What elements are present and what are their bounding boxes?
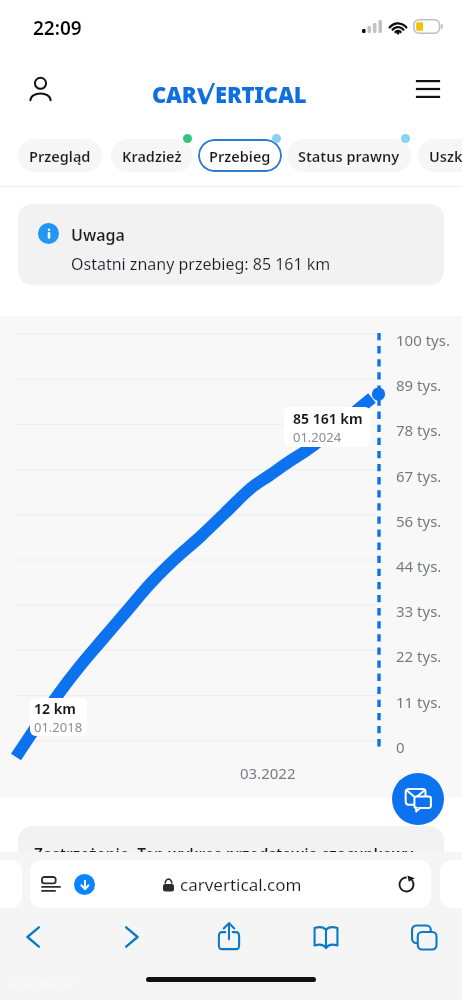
staticText: 78 tys. xyxy=(396,420,442,440)
staticText: 89 tys. xyxy=(396,375,442,395)
button[interactable]: Downloads xyxy=(74,874,95,895)
staticText: 03.2022 xyxy=(240,763,296,783)
button[interactable]: Tabs xyxy=(402,915,446,959)
button[interactable]: Uszkodzenia xyxy=(418,139,462,172)
button[interactable]: Status prawny xyxy=(287,139,411,172)
button[interactable]: Przebieg xyxy=(198,139,282,172)
button[interactable]: Reload xyxy=(394,872,418,896)
staticText: 85 161 km xyxy=(293,409,363,428)
button[interactable]: Menu xyxy=(406,67,450,111)
button[interactable]: Uwaga xyxy=(18,204,444,285)
staticText: CAR xyxy=(152,79,197,109)
staticText: 0 xyxy=(396,737,405,757)
button[interactable]: Page settings xyxy=(38,872,62,896)
button[interactable]: Zastrzeżenie. Ten wykres przedstawia sza… xyxy=(18,826,444,866)
button[interactable]: Chat with us xyxy=(392,773,444,825)
staticText: 12 km xyxy=(34,699,76,718)
staticText: 33 tys. xyxy=(396,601,442,621)
button[interactable]: Back xyxy=(11,915,55,959)
button[interactable]: Forward xyxy=(110,915,154,959)
staticText: 22 tys. xyxy=(396,646,442,666)
staticText: Uwaga xyxy=(71,224,125,246)
staticText: Przegląd xyxy=(29,146,91,166)
staticText: 100 tys. xyxy=(396,330,450,350)
staticText: ERTICAL xyxy=(215,79,307,109)
staticText: 56 tys. xyxy=(396,511,442,531)
button[interactable]: Account xyxy=(18,67,62,111)
staticText: Przebieg xyxy=(209,146,271,166)
staticText: 01.2024 xyxy=(293,428,342,446)
staticText: 22:09 xyxy=(33,15,82,41)
staticText: Ostatni znany przebieg: 85 161 km xyxy=(71,253,331,275)
staticText: Uszkodzenia xyxy=(429,146,462,166)
staticText: 44 tys. xyxy=(396,556,442,576)
staticText: Status prawny xyxy=(298,146,400,166)
button[interactable]: Przegląd xyxy=(18,139,102,172)
button[interactable]: Kradzież xyxy=(111,139,193,172)
button[interactable]: Share xyxy=(207,914,251,958)
button[interactable]: Page settings xyxy=(30,860,431,908)
staticText: carvertical.com xyxy=(180,873,302,896)
staticText: 11 tys. xyxy=(396,692,442,712)
button[interactable]: Bookmarks xyxy=(304,915,348,959)
staticText: 01.2018 xyxy=(34,718,83,736)
staticText: Kradzież xyxy=(122,146,182,166)
staticText: 67 tys. xyxy=(396,466,442,486)
staticText: Zastrzeżenie. Ten wykres przedstawia sza… xyxy=(34,843,414,864)
